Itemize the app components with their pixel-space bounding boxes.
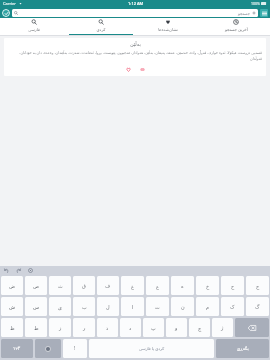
button[interactable]: ص bbox=[25, 276, 47, 295]
staticText: ! bbox=[74, 345, 76, 352]
button[interactable]: Backspace bbox=[235, 318, 269, 337]
button[interactable]: بەڵێن bbox=[4, 38, 266, 76]
button[interactable]: و bbox=[166, 318, 187, 337]
button[interactable]: ق bbox=[73, 276, 95, 295]
button[interactable]: ف bbox=[97, 276, 119, 295]
button[interactable]: کردی bbox=[67, 18, 134, 35]
button[interactable]: Settings bbox=[27, 267, 34, 274]
staticText: ج bbox=[256, 283, 260, 289]
staticText: کردی bbox=[96, 27, 106, 32]
button[interactable]: Undo bbox=[3, 267, 10, 274]
button[interactable]: Confirm bbox=[2, 9, 10, 17]
staticText: ر bbox=[83, 325, 86, 331]
button[interactable]: چ bbox=[189, 318, 210, 337]
button[interactable]: ذ bbox=[97, 318, 118, 337]
staticText: ث bbox=[58, 283, 63, 289]
button[interactable]: ش bbox=[1, 297, 23, 316]
staticText: ی bbox=[58, 304, 62, 310]
staticText: ص bbox=[33, 283, 40, 289]
staticText: ش bbox=[9, 304, 16, 310]
staticText: ط bbox=[34, 325, 39, 331]
button[interactable]: فارسی bbox=[0, 18, 67, 35]
staticText: فارسی bbox=[28, 27, 40, 32]
staticText: ح bbox=[231, 283, 235, 289]
button[interactable]: ث bbox=[49, 276, 71, 295]
button[interactable]: بگەڕێ bbox=[216, 339, 269, 358]
button[interactable]: ر bbox=[73, 318, 95, 337]
button[interactable]: Bookmark bbox=[124, 65, 132, 73]
staticText: ف bbox=[105, 283, 111, 289]
staticText: ض bbox=[9, 283, 16, 289]
button[interactable]: ج bbox=[246, 276, 269, 295]
button[interactable]: د bbox=[120, 318, 141, 337]
staticText: ل bbox=[106, 304, 110, 310]
button[interactable]: ط bbox=[25, 318, 47, 337]
staticText: ن bbox=[181, 304, 185, 310]
button[interactable]: Redo bbox=[15, 267, 22, 274]
staticText: ق bbox=[82, 283, 86, 289]
staticText: د bbox=[129, 325, 132, 331]
staticText: ا bbox=[132, 304, 134, 310]
button[interactable]: خ bbox=[196, 276, 219, 295]
staticText: بەڵێن bbox=[130, 41, 141, 47]
staticText: ظ bbox=[10, 325, 15, 331]
button[interactable]: ظ bbox=[1, 318, 23, 337]
staticText: م bbox=[206, 304, 210, 310]
button[interactable]: م bbox=[196, 297, 219, 316]
staticText: 100% bbox=[251, 1, 260, 6]
staticText: غ bbox=[131, 283, 134, 289]
staticText: Carrier bbox=[3, 1, 17, 6]
button[interactable]: کردی یا فارسی bbox=[89, 339, 214, 358]
button[interactable]: ژ bbox=[212, 318, 233, 337]
staticText: ه bbox=[181, 283, 184, 289]
staticText: ژ bbox=[221, 325, 224, 331]
button[interactable]: ح bbox=[221, 276, 244, 295]
button[interactable]: غ bbox=[121, 276, 144, 295]
button[interactable]: Play pronunciation bbox=[138, 65, 146, 73]
button[interactable]: ا bbox=[121, 297, 144, 316]
button[interactable]: ع bbox=[146, 276, 169, 295]
staticText: کردی یا فارسی bbox=[139, 346, 165, 351]
staticText: آخرین جستجو bbox=[225, 27, 248, 32]
button[interactable]: آخرین جستجو bbox=[202, 18, 270, 35]
staticText: بگەڕێ bbox=[237, 346, 249, 351]
button[interactable]: ۱۲۳ bbox=[1, 339, 33, 358]
button[interactable]: جستجو bbox=[12, 9, 258, 17]
staticText: ت bbox=[155, 304, 160, 310]
staticText: پ bbox=[151, 325, 156, 331]
staticText: و bbox=[175, 325, 178, 331]
staticText: 1:12 AM bbox=[128, 1, 144, 6]
staticText: گ bbox=[255, 304, 260, 310]
staticText: ذ bbox=[106, 325, 109, 331]
button[interactable]: ک bbox=[221, 297, 244, 316]
staticText: ب bbox=[82, 304, 87, 310]
button[interactable]: ب bbox=[73, 297, 95, 316]
button[interactable]: ض bbox=[1, 276, 23, 295]
button[interactable]: Change keyboard bbox=[35, 339, 61, 358]
button[interactable]: List view bbox=[260, 9, 268, 17]
staticText: ع bbox=[156, 283, 159, 289]
button[interactable]: ت bbox=[146, 297, 169, 316]
staticText: خ bbox=[206, 283, 210, 289]
staticText: ۱۲۳ bbox=[13, 346, 21, 351]
button[interactable]: نشان‌شده‌ها bbox=[134, 18, 202, 35]
staticText: نشان‌شده‌ها bbox=[158, 27, 178, 32]
button[interactable]: ز bbox=[49, 318, 71, 337]
button[interactable]: ن bbox=[171, 297, 194, 316]
staticText: جستجو bbox=[238, 11, 250, 16]
button[interactable]: پ bbox=[143, 318, 164, 337]
button[interactable]: ! bbox=[63, 339, 87, 358]
button[interactable]: ل bbox=[97, 297, 119, 316]
button[interactable]: س bbox=[25, 297, 47, 316]
staticText: قسەیی دروست، میکۆلا، ئەوە خوازی، قەوڵ، و… bbox=[8, 50, 262, 61]
button[interactable]: ی bbox=[49, 297, 71, 316]
button[interactable]: ه bbox=[171, 276, 194, 295]
staticText: ز bbox=[59, 325, 62, 331]
staticText: چ bbox=[198, 325, 202, 331]
button[interactable]: گ bbox=[246, 297, 269, 316]
staticText: ک bbox=[230, 304, 235, 310]
staticText: س bbox=[33, 304, 40, 310]
